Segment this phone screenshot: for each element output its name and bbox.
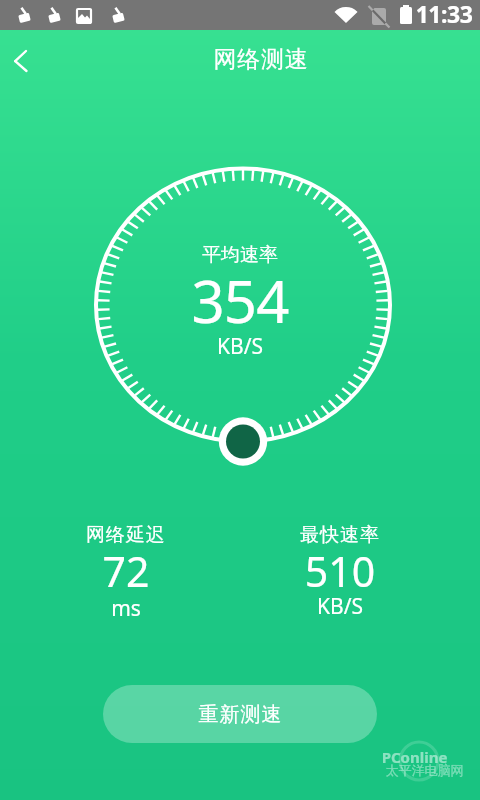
staticText: 510 (260, 543, 420, 599)
staticText: 72 (46, 543, 206, 599)
staticText: 11:33 (413, 0, 475, 28)
staticText: PConline (366, 747, 463, 767)
staticText: 354 (0, 261, 480, 340)
button[interactable] (0, 30, 48, 78)
staticText: 网络延迟 (46, 523, 206, 547)
staticText: 重新测速 (198, 702, 282, 727)
staticText: ms (46, 594, 206, 623)
staticText: 太平洋电脑网 (376, 762, 473, 778)
staticText: KB/S (0, 332, 480, 361)
staticText: 最快速率 (260, 523, 420, 547)
staticText: KB/S (260, 592, 420, 621)
button[interactable]: 重新测速 (103, 685, 377, 743)
staticText: 网络测速 (21, 45, 480, 74)
staticText: 平均速率 (0, 243, 480, 267)
